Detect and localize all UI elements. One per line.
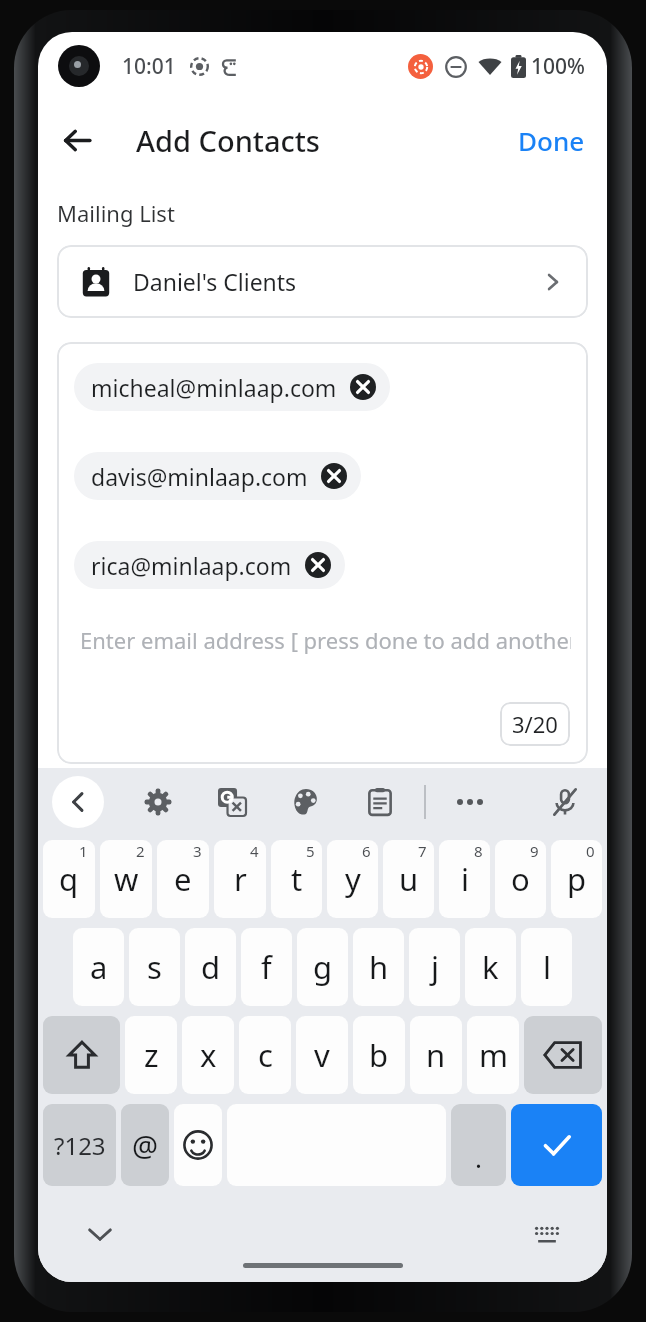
button[interactable]: n bbox=[410, 1016, 462, 1094]
button[interactable]: Themes bbox=[284, 780, 328, 824]
button[interactable]: . bbox=[451, 1104, 506, 1186]
button[interactable]: ?123 bbox=[43, 1104, 116, 1186]
button[interactable]: Previous bbox=[52, 776, 104, 828]
staticText: i bbox=[461, 858, 469, 900]
button[interactable]: Hide keyboard bbox=[78, 1212, 122, 1256]
button[interactable]: davis@minlaap.com bbox=[74, 452, 361, 500]
staticText: h bbox=[369, 946, 389, 988]
button[interactable]: k bbox=[465, 928, 516, 1006]
staticText: Daniel's Clients bbox=[133, 266, 297, 297]
staticText: 100% bbox=[531, 52, 585, 81]
other: Remove micheal@minlaap.com bbox=[350, 374, 376, 400]
staticText: 5 bbox=[306, 841, 315, 861]
staticText: t bbox=[291, 858, 303, 900]
staticText: 9 bbox=[530, 841, 539, 861]
staticText: y bbox=[345, 858, 361, 900]
button[interactable]: i bbox=[439, 840, 490, 918]
staticText: d bbox=[201, 946, 221, 988]
button[interactable]: Emoji bbox=[174, 1104, 222, 1186]
button[interactable]: d bbox=[185, 928, 236, 1006]
staticText: . bbox=[475, 1140, 482, 1175]
button[interactable]: Settings bbox=[136, 780, 180, 824]
staticText: j bbox=[431, 946, 439, 988]
other: Remove rica@minlaap.com bbox=[305, 552, 331, 578]
button[interactable]: p bbox=[551, 840, 602, 918]
button[interactable]: y bbox=[327, 840, 378, 918]
staticText: 3/20 bbox=[512, 709, 558, 739]
button[interactable]: rica@minlaap.com bbox=[74, 541, 345, 589]
button[interactable]: f bbox=[241, 928, 292, 1006]
button[interactable]: Enter bbox=[511, 1104, 602, 1186]
button[interactable]: g bbox=[297, 928, 348, 1006]
staticText: 6 bbox=[362, 841, 371, 861]
button[interactable]: x bbox=[182, 1016, 234, 1094]
button[interactable]: c bbox=[239, 1016, 291, 1094]
button[interactable]: Done bbox=[512, 117, 591, 164]
staticText: 8 bbox=[474, 841, 483, 861]
button[interactable]: u bbox=[383, 840, 434, 918]
staticText: w bbox=[114, 858, 139, 900]
staticText: q bbox=[59, 858, 79, 900]
staticText: m bbox=[479, 1034, 508, 1076]
button[interactable]: Backspace bbox=[524, 1016, 602, 1094]
button[interactable]: m bbox=[467, 1016, 519, 1094]
staticText: g bbox=[313, 946, 333, 988]
button[interactable]: h bbox=[353, 928, 404, 1006]
staticText: Add Contacts bbox=[136, 121, 320, 160]
button[interactable]: @ bbox=[121, 1104, 169, 1186]
staticText: 2 bbox=[136, 841, 145, 861]
staticText: z bbox=[144, 1034, 159, 1076]
button[interactable]: Daniel's Clients bbox=[57, 245, 588, 318]
staticText: rica@minlaap.com bbox=[91, 550, 292, 581]
staticText: u bbox=[399, 858, 419, 900]
staticText: c bbox=[258, 1034, 273, 1076]
staticText: l bbox=[543, 946, 551, 988]
button[interactable]: t bbox=[271, 840, 322, 918]
staticText: 3 bbox=[193, 841, 202, 861]
button[interactable]: s bbox=[129, 928, 180, 1006]
button[interactable]: Clipboard bbox=[358, 780, 402, 824]
button[interactable]: e bbox=[157, 840, 209, 918]
button[interactable]: Translate bbox=[210, 780, 254, 824]
staticText: a bbox=[90, 946, 108, 988]
button[interactable]: r bbox=[214, 840, 266, 918]
staticText: 4 bbox=[250, 841, 259, 861]
button[interactable]: More options bbox=[448, 780, 492, 824]
button[interactable]: v bbox=[296, 1016, 348, 1094]
staticText: v bbox=[314, 1034, 330, 1076]
button[interactable]: Switch keyboard bbox=[525, 1212, 569, 1256]
button[interactable]: w bbox=[100, 840, 152, 918]
staticText: k bbox=[482, 946, 499, 988]
staticText: 0 bbox=[586, 841, 595, 861]
staticText: n bbox=[426, 1034, 446, 1076]
staticText: @ bbox=[132, 1126, 159, 1165]
button[interactable]: micheal@minlaap.com bbox=[74, 363, 390, 411]
staticText: Done bbox=[518, 123, 585, 158]
staticText: r bbox=[234, 858, 247, 900]
staticText: 1 bbox=[79, 841, 88, 861]
button[interactable]: q bbox=[43, 840, 95, 918]
staticText: 10:01 bbox=[122, 52, 176, 81]
staticText: b bbox=[369, 1034, 389, 1076]
button[interactable]: a bbox=[73, 928, 124, 1006]
button[interactable]: j bbox=[409, 928, 460, 1006]
button[interactable]: o bbox=[495, 840, 546, 918]
staticText: s bbox=[147, 946, 162, 988]
staticText: Enter email address [ press done to add … bbox=[80, 625, 571, 655]
staticText: o bbox=[511, 858, 530, 900]
button[interactable]: l bbox=[521, 928, 572, 1006]
staticText: davis@minlaap.com bbox=[91, 461, 308, 492]
button[interactable]: Shift bbox=[43, 1016, 120, 1094]
staticText: ?123 bbox=[54, 1129, 106, 1162]
staticText: Mailing List bbox=[57, 198, 175, 228]
staticText: p bbox=[567, 858, 587, 900]
staticText: e bbox=[174, 858, 192, 900]
other: Remove davis@minlaap.com bbox=[321, 463, 347, 489]
button[interactable]: z bbox=[125, 1016, 177, 1094]
button[interactable]: Back bbox=[48, 111, 106, 169]
button[interactable]: b bbox=[353, 1016, 405, 1094]
staticText: micheal@minlaap.com bbox=[91, 372, 337, 403]
staticText: 7 bbox=[418, 841, 427, 861]
button[interactable]: Voice input off bbox=[543, 780, 587, 824]
